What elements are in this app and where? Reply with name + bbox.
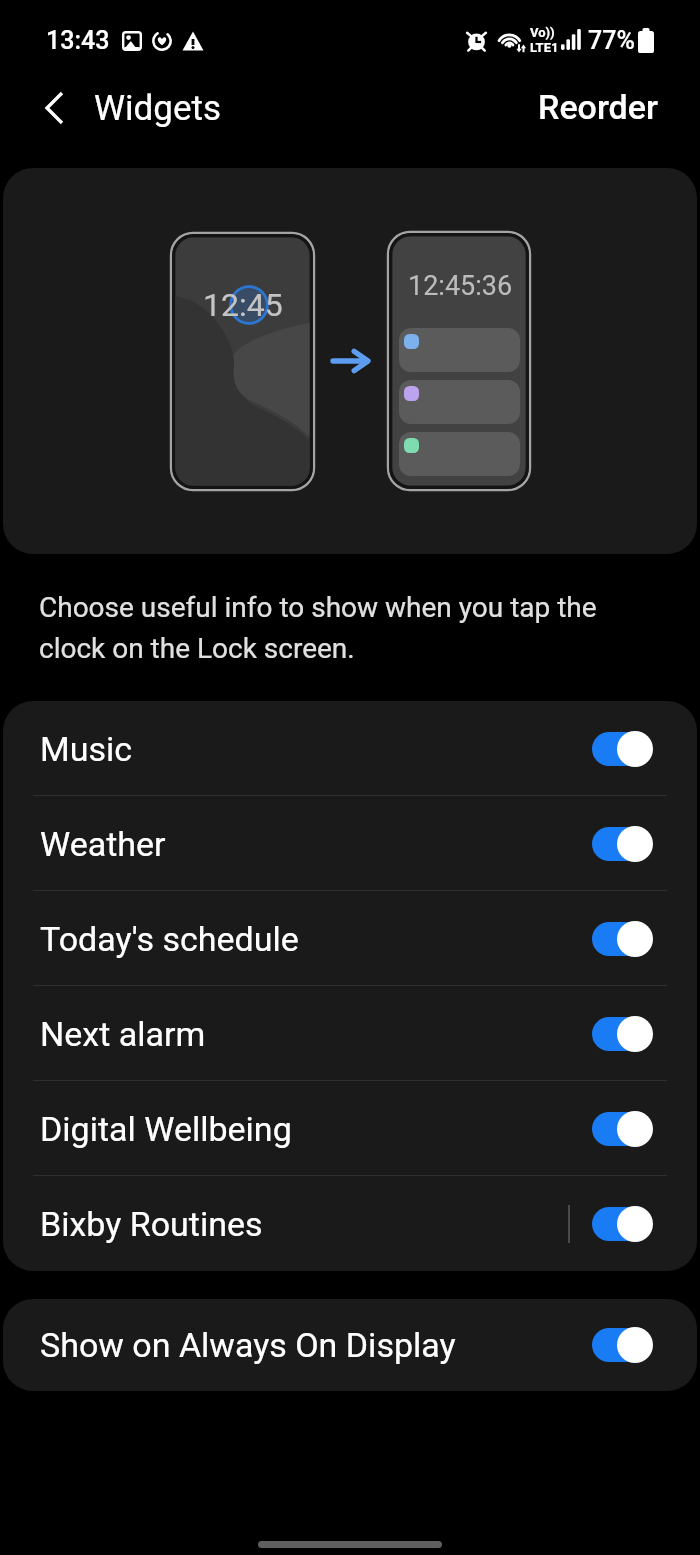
button[interactable]: Today's schedule — [3, 891, 697, 986]
staticText: 12:45:36 — [408, 270, 513, 302]
staticText: Show on Always On Display — [40, 1325, 592, 1365]
staticText: 12:45 — [203, 286, 283, 324]
staticText: LTE1 — [530, 40, 559, 55]
staticText: Digital Wellbeing — [40, 1109, 592, 1149]
button[interactable]: Reorder — [508, 75, 700, 139]
staticText: Next alarm — [40, 1014, 592, 1054]
button[interactable]: Show on Always On Display — [3, 1299, 697, 1391]
staticText: Choose useful info to show when you tap … — [39, 585, 597, 667]
button[interactable]: Toggle — [592, 729, 654, 769]
staticText: Vo)) — [530, 25, 555, 40]
button[interactable]: Music — [3, 701, 697, 796]
button[interactable]: Toggle — [592, 919, 654, 959]
staticText: 77% — [588, 26, 635, 55]
button[interactable]: Toggle — [592, 1325, 654, 1365]
button[interactable]: Toggle — [592, 1014, 654, 1054]
staticText: Music — [40, 729, 592, 769]
other: becomes — [331, 345, 371, 377]
staticText: Weather — [40, 824, 592, 864]
button[interactable]: Toggle — [592, 1204, 654, 1244]
staticText: Bixby Routines — [40, 1204, 568, 1244]
button[interactable]: Toggle — [592, 824, 654, 864]
button[interactable]: Toggle — [592, 1109, 654, 1149]
button[interactable]: Bixby Routines — [3, 1176, 697, 1271]
staticText: Widgets — [94, 88, 222, 129]
staticText: Today's schedule — [40, 919, 592, 959]
staticText: 13:43 — [46, 26, 110, 55]
button[interactable]: Navigate up — [27, 81, 81, 135]
button[interactable]: Digital Wellbeing — [3, 1081, 697, 1176]
staticText: Reorder — [538, 87, 658, 127]
button[interactable]: Next alarm — [3, 986, 697, 1081]
button[interactable]: Weather — [3, 796, 697, 891]
